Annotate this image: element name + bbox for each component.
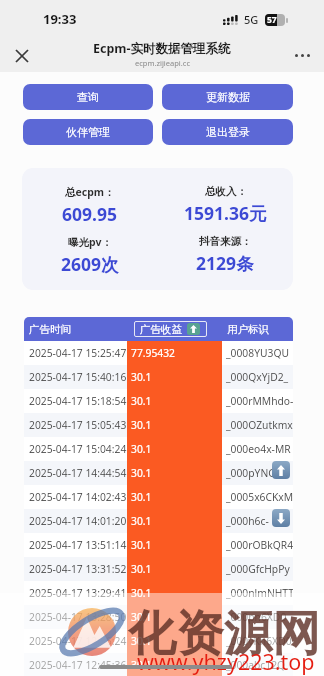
button[interactable]: 2025-04-17 14:44:54 [24,461,293,485]
staticText: 2129条 [196,251,254,275]
staticText: 2025-04-17 13:51:14 [29,538,127,552]
staticText: 2025-04-17 15:40:16 [29,370,127,384]
staticText: 30.1 [131,442,152,456]
staticText: _000rMMhdo- [226,394,293,408]
button[interactable]: 2025-04-17 13:51:14 [24,533,293,557]
staticText: 30.1 [131,562,152,576]
staticText: Ecpm-实时数据管理系统 [93,40,231,57]
button[interactable]: 2025-04-17 13:28:50 [24,605,293,629]
staticText: _0008YU3QU [226,346,289,360]
staticText: 2025-04-17 13:28:50 [29,610,127,624]
staticText: 30.1 [131,394,152,408]
staticText: 30.1 [131,586,152,600]
staticText: 19:33 [43,10,77,28]
staticText: 57 [267,14,277,26]
button[interactable]: 2025-04-17 15:18:54 [24,389,293,413]
staticText: _000yKn6XD0 [226,634,292,648]
staticText: 1591.36元 [184,201,267,225]
button[interactable]: 2025-04-17 15:04:24 [24,437,293,461]
staticText: 5G [244,12,259,27]
staticText: 用户标识 [227,323,269,336]
staticText: 化资源网 [128,604,320,664]
staticText: 2025-04-17 12:45:36 [29,658,127,672]
staticText: 广告时间 [29,323,71,336]
staticText: _000h6c- [226,514,269,528]
staticText: 更新数据 [206,90,250,104]
staticText: 30.1 [131,370,152,384]
staticText: 30.1 [131,658,152,672]
staticText: 总ecpm： [65,185,115,199]
staticText: 77.95432 [131,346,175,360]
button[interactable]: 2025-04-17 14:01:20 [24,509,293,533]
staticText: 2025-04-17 13:29:41 [29,586,127,600]
staticText: _000abc12Q [226,658,286,672]
button[interactable]: 2025-04-17 15:25:47 [24,341,293,365]
button[interactable]: 2025-04-17 15:05:43 [24,413,293,437]
staticText: 广告收益 [140,323,182,336]
staticText: www.yhzy223.top [137,647,315,676]
staticText: 2025-04-17 15:25:47 [29,346,127,360]
button[interactable]: 2025-04-17 12:45:36 [24,653,293,676]
staticText: 2025-04-17 14:01:20 [29,514,127,528]
staticText: 30.1 [131,610,152,624]
staticText: 30.1 [131,634,152,648]
staticText: _000nlmNHTT [226,586,293,600]
staticText: 2025-04-17 15:04:24 [29,442,127,456]
staticText: _000OZutkmx [226,418,293,432]
button[interactable]: 退出登录 [162,119,293,145]
staticText: 抖音来源： [199,235,252,248]
button[interactable]: 2025-04-17 15:40:16 [24,365,293,389]
staticText: 2025-04-17 12:56:24 [29,634,127,648]
button[interactable]: 伙伴管理 [23,119,153,145]
button[interactable]: 2025-04-17 12:56:24 [24,629,293,653]
staticText: 2025-04-17 15:18:54 [29,394,127,408]
staticText: 609.95 [62,202,117,226]
staticText: _000eo4x-MR [226,442,291,456]
staticText: 2025-04-17 15:05:43 [29,418,127,432]
other: Sort ascending [187,323,200,335]
staticText: 2025-04-17 13:31:52 [29,562,127,576]
staticText: _000pYNG [226,466,276,480]
staticText: 30.1 [131,490,152,504]
staticText: _000QxYjD2_ [226,370,289,384]
staticText: 2025-04-17 14:02:43 [29,490,127,504]
staticText: 伙伴管理 [66,125,110,139]
staticText: _000pn6XD0 [226,610,287,624]
staticText: 查询 [77,90,99,104]
button[interactable]: 2025-04-17 13:31:52 [24,557,293,581]
staticText: 曝光pv： [68,235,112,249]
button[interactable]: Close [6,40,37,71]
button[interactable]: 2025-04-17 13:29:41 [24,581,293,605]
staticText: 30.1 [131,466,152,480]
button[interactable]: 查询 [23,84,153,110]
button[interactable]: More options [287,40,318,71]
staticText: _000rOBkQR4 [226,538,293,552]
button[interactable]: 更新数据 [162,84,293,110]
staticText: 2025-04-17 14:44:54 [29,466,127,480]
staticText: 30.1 [131,514,152,528]
staticText: 退出登录 [206,125,250,139]
staticText: 30.1 [131,418,152,432]
staticText: 2609次 [61,252,119,276]
staticText: _000GfcHpPy [226,562,290,576]
button[interactable]: 广告收益 [140,321,200,337]
staticText: ecpm.zijieapi.cc [135,58,190,68]
staticText: _0005x6CKxM [226,490,293,504]
staticText: 总收入： [205,185,247,198]
staticText: 30.1 [131,538,152,552]
button[interactable]: 2025-04-17 14:02:43 [24,485,293,509]
